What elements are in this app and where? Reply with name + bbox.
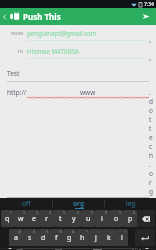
staticText: ( bbox=[125, 229, 127, 234]
staticText: + bbox=[111, 229, 114, 234]
staticText: e bbox=[32, 214, 36, 224]
staticText: 3 bbox=[36, 210, 39, 215]
staticText: http:// bbox=[7, 88, 27, 97]
button[interactable]: y bbox=[67, 210, 81, 227]
staticText: TO bbox=[17, 49, 23, 55]
button[interactable]: j bbox=[89, 229, 102, 246]
staticText: o bbox=[114, 214, 119, 224]
staticText: @ bbox=[18, 229, 22, 234]
staticText: t bbox=[59, 214, 62, 224]
staticText: 8 bbox=[105, 210, 108, 215]
staticText: 7:34 bbox=[144, 1, 154, 8]
staticText: h bbox=[80, 233, 85, 243]
button[interactable]: f bbox=[50, 229, 63, 246]
staticText: leg bbox=[126, 199, 136, 208]
staticText: www bbox=[80, 88, 96, 97]
button[interactable]: p bbox=[123, 210, 137, 227]
staticText: 5 bbox=[63, 210, 66, 215]
staticText: a bbox=[14, 233, 18, 243]
button[interactable]: u bbox=[81, 210, 95, 227]
staticText: 4 bbox=[49, 210, 52, 215]
staticText: Push This bbox=[23, 11, 61, 22]
button[interactable]: e bbox=[27, 210, 40, 227]
staticText: u bbox=[86, 214, 91, 224]
button[interactable]: w bbox=[14, 210, 27, 227]
staticText: r bbox=[45, 214, 48, 224]
staticText: 6 bbox=[77, 210, 80, 215]
button[interactable]: Test bbox=[7, 69, 149, 82]
staticText: w bbox=[18, 214, 24, 224]
staticText: l bbox=[121, 233, 123, 243]
button[interactable]: h bbox=[76, 229, 89, 246]
staticText: f bbox=[55, 233, 58, 243]
button[interactable]: d bbox=[37, 229, 50, 246]
button[interactable]: r bbox=[40, 210, 53, 227]
button[interactable]: FROM bbox=[3, 29, 151, 43]
staticText: & bbox=[72, 229, 75, 234]
staticText: 1 bbox=[10, 210, 13, 215]
button[interactable]: a bbox=[9, 229, 23, 246]
button[interactable]: Shift bbox=[138, 248, 155, 249]
button[interactable]: g bbox=[63, 229, 76, 246]
staticText: off bbox=[22, 199, 31, 208]
staticText: y bbox=[72, 214, 76, 224]
staticText: $ bbox=[46, 229, 49, 234]
staticText: - bbox=[99, 229, 101, 234]
button[interactable]: l bbox=[115, 229, 128, 246]
button[interactable]: t bbox=[53, 210, 67, 227]
staticText: k bbox=[107, 233, 111, 243]
staticText: # bbox=[33, 229, 36, 234]
button[interactable]: o bbox=[109, 210, 123, 227]
staticText: 9 bbox=[119, 210, 122, 215]
button[interactable]: App icon bbox=[8, 8, 21, 25]
button[interactable]: Shift bbox=[1, 248, 19, 249]
button[interactable]: TO bbox=[3, 47, 151, 61]
staticText: 7 bbox=[91, 210, 94, 215]
staticText: Hisense M4T0BSA bbox=[27, 47, 80, 55]
staticText: org bbox=[73, 199, 85, 208]
button[interactable]: s bbox=[23, 229, 37, 246]
staticText: j bbox=[95, 233, 97, 243]
staticText: 2 bbox=[23, 210, 26, 215]
staticText: p bbox=[128, 214, 133, 224]
button[interactable]: Delete bbox=[137, 210, 155, 227]
staticText: % bbox=[59, 229, 62, 234]
button[interactable]: Navigate up bbox=[0, 8, 8, 25]
button[interactable]: Enter bbox=[135, 229, 155, 246]
button[interactable]: k bbox=[102, 229, 115, 246]
staticText: 0 bbox=[133, 210, 136, 215]
button[interactable]: off bbox=[0, 198, 52, 209]
staticText: Test bbox=[7, 69, 20, 78]
button[interactable]: leg bbox=[105, 198, 156, 209]
staticText: g bbox=[67, 233, 72, 243]
button[interactable]: org bbox=[53, 198, 104, 209]
staticText: FROM bbox=[10, 31, 23, 37]
button[interactable]: q bbox=[1, 210, 14, 227]
button[interactable]: http:// bbox=[7, 88, 149, 198]
staticText: d bbox=[41, 233, 46, 243]
staticText: s bbox=[28, 233, 32, 243]
staticText: penguinapt@gmail.com bbox=[27, 29, 97, 37]
button[interactable]: i bbox=[95, 210, 109, 227]
staticText: * bbox=[86, 229, 88, 234]
button[interactable]: Send bbox=[136, 8, 156, 25]
